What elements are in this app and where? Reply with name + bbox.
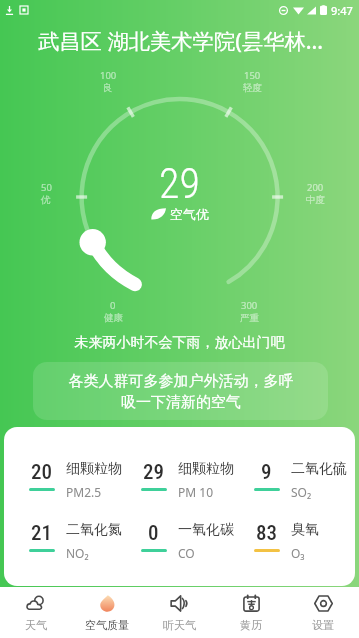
staticText: 天气 bbox=[25, 618, 47, 632]
staticText: 严重 bbox=[240, 312, 259, 324]
staticText: O₃ bbox=[291, 545, 305, 561]
staticText: 20 bbox=[31, 460, 52, 485]
staticText: 武昌区 湖北美术学院(昙华林... bbox=[38, 26, 324, 55]
staticText: NO₂ bbox=[66, 545, 89, 561]
staticText: 0 bbox=[148, 521, 159, 546]
staticText: 细颗粒物 bbox=[178, 460, 234, 478]
staticText: 良 bbox=[103, 82, 113, 94]
staticText: 50 bbox=[41, 181, 52, 194]
staticText: 未来两小时不会下雨，放心出门吧 bbox=[0, 334, 359, 352]
staticText: 轻度 bbox=[243, 82, 262, 94]
staticText: 29 bbox=[159, 159, 200, 208]
staticText: 黄历 bbox=[240, 618, 262, 632]
button[interactable]: 天气 bbox=[0, 587, 71, 638]
button[interactable]: 空气质量 bbox=[71, 587, 143, 638]
staticText: 二氧化氮 bbox=[66, 521, 122, 539]
staticText: SO₂ bbox=[291, 484, 312, 500]
staticText: 各类人群可多参加户外活动，多呼吸一下清新的空气 bbox=[63, 372, 299, 411]
staticText: 设置 bbox=[312, 618, 334, 632]
staticText: 9 bbox=[261, 460, 272, 485]
staticText: 细颗粒物 bbox=[66, 460, 122, 478]
staticText: 优 bbox=[41, 194, 51, 206]
staticText: 一氧化碳 bbox=[178, 521, 234, 539]
staticText: 29 bbox=[143, 460, 164, 485]
staticText: 300 bbox=[241, 299, 258, 312]
staticText: PM 10 bbox=[178, 484, 213, 500]
button[interactable]: 设置 bbox=[287, 587, 359, 638]
staticText: 9:47 bbox=[331, 3, 353, 18]
staticText: 中度 bbox=[306, 194, 325, 206]
button[interactable]: 黄历 bbox=[215, 587, 287, 638]
staticText: 二氧化硫 bbox=[291, 460, 347, 478]
staticText: 臭氧 bbox=[291, 521, 319, 539]
staticText: CO bbox=[178, 545, 195, 561]
staticText: 0 bbox=[110, 299, 116, 312]
staticText: 150 bbox=[244, 69, 261, 82]
staticText: 空气质量 bbox=[85, 618, 129, 632]
staticText: 200 bbox=[307, 181, 324, 194]
staticText: 空气优 bbox=[170, 206, 209, 222]
staticText: 100 bbox=[100, 69, 117, 82]
staticText: PM2.5 bbox=[66, 484, 102, 500]
staticText: 听天气 bbox=[163, 618, 196, 632]
staticText: 健康 bbox=[104, 312, 123, 324]
staticText: 21 bbox=[31, 521, 52, 546]
button[interactable]: 听天气 bbox=[143, 587, 215, 638]
staticText: 83 bbox=[256, 521, 277, 546]
